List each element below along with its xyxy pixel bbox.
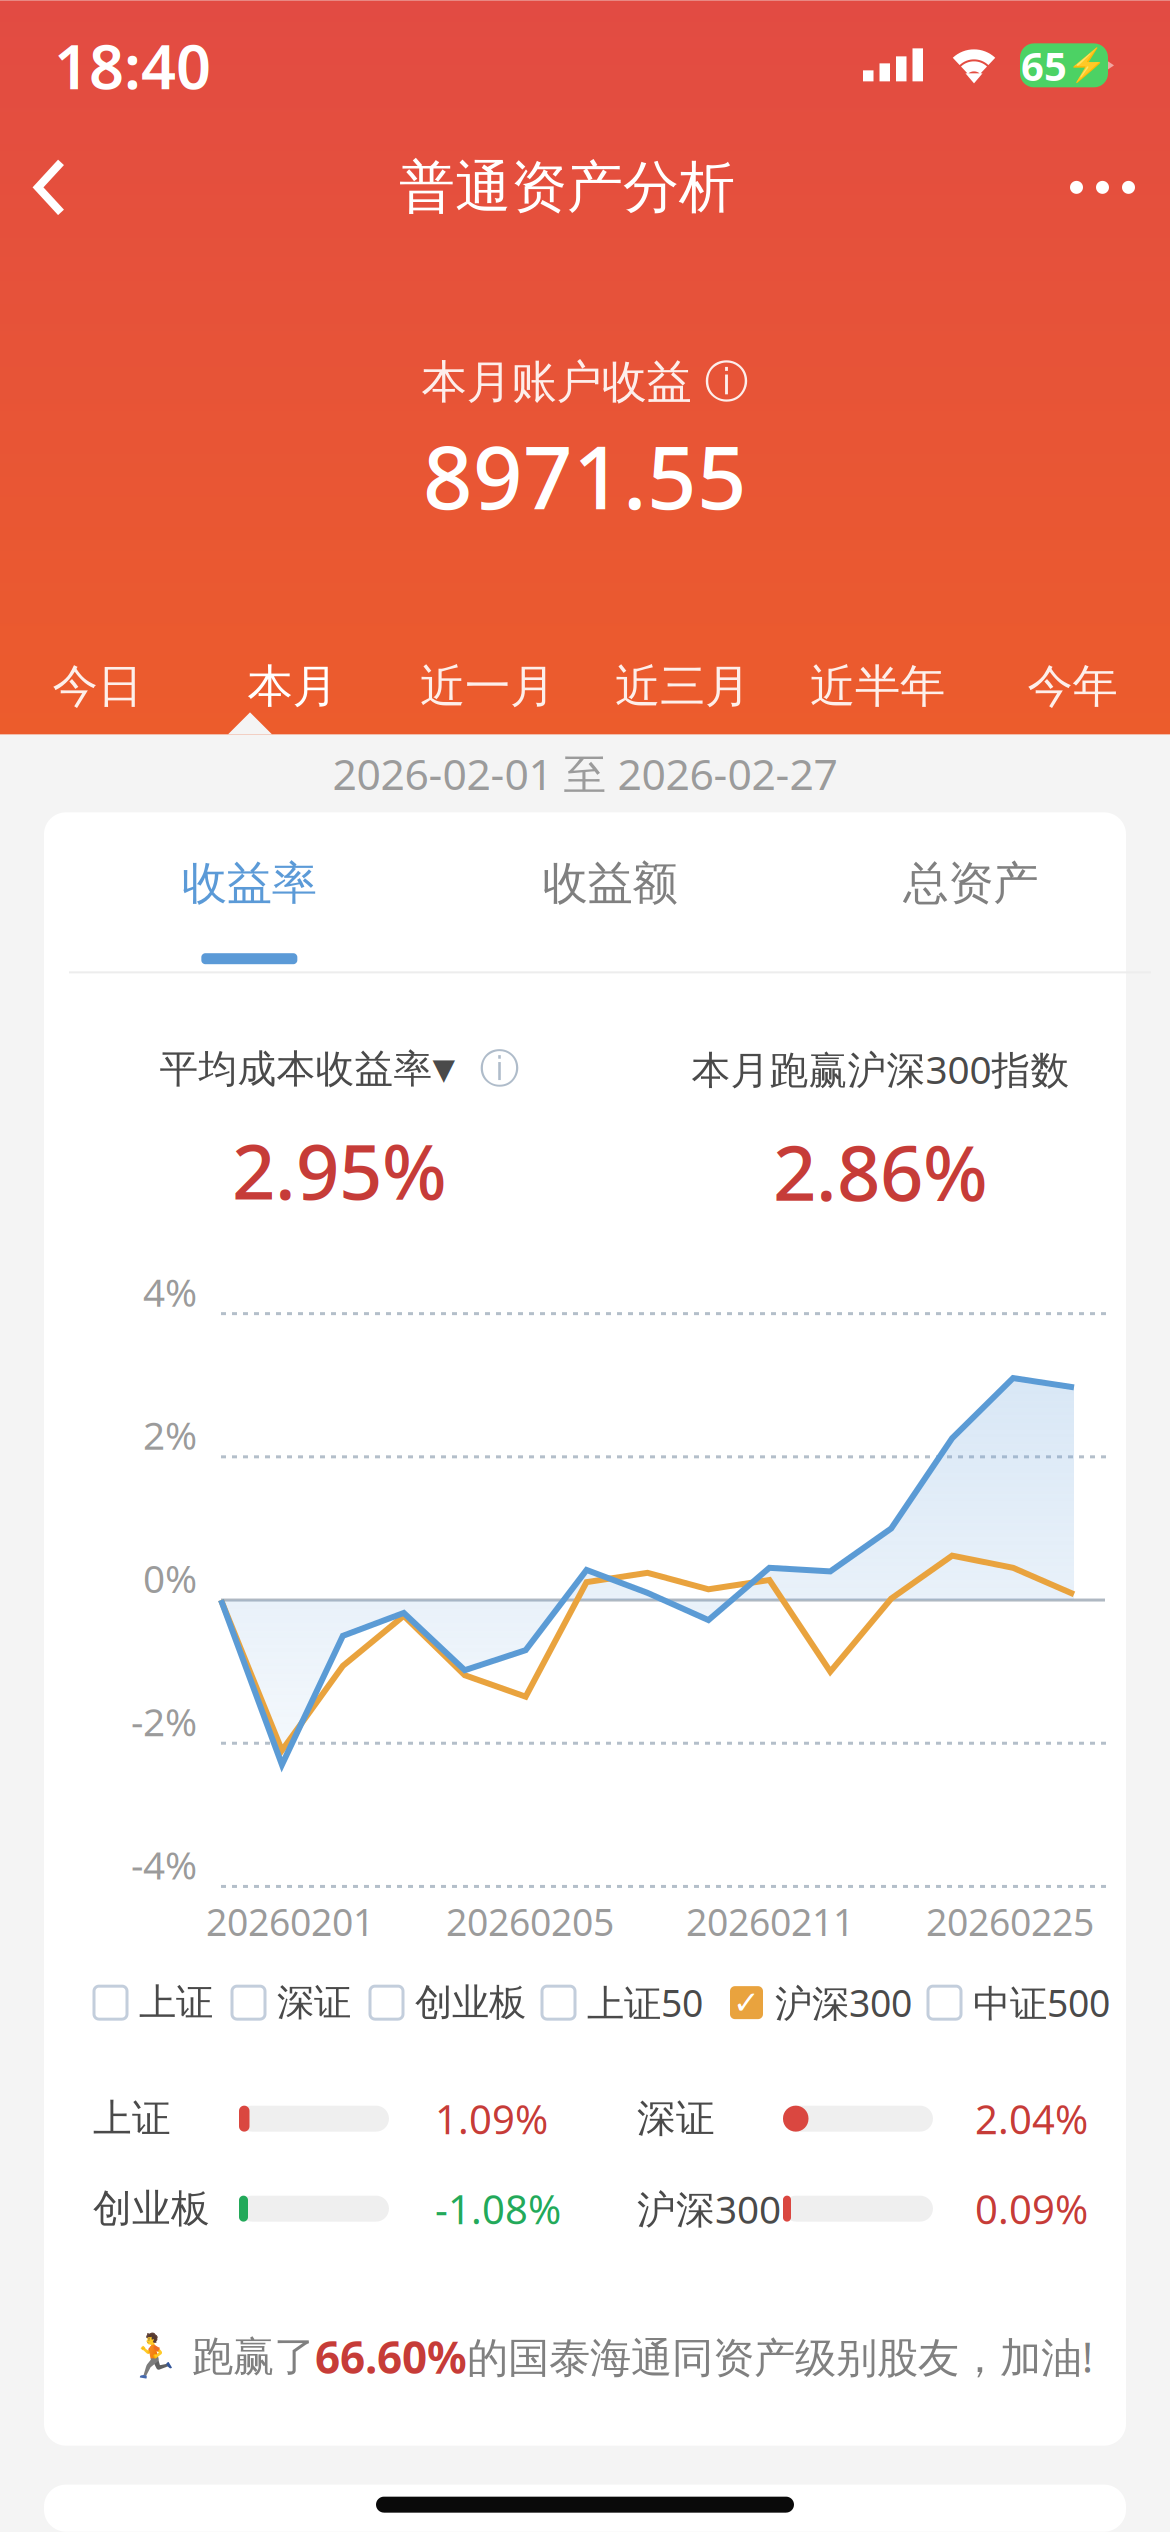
staticText: 创业板 <box>93 2185 210 2232</box>
button[interactable]: 创业板 <box>370 1980 542 2026</box>
staticText: 0.09% <box>975 2182 1088 2235</box>
staticText: 平均成本收益率 <box>159 1045 432 1093</box>
staticText: ⚡ <box>1067 47 1107 84</box>
staticText: 本月跑赢沪深300指数 <box>691 1043 1069 1095</box>
button[interactable]: 本月 <box>195 638 390 734</box>
staticText: 沪深300 <box>637 2183 781 2234</box>
staticText: ✓ <box>733 1984 760 2021</box>
staticText: 总资产 <box>903 855 1038 911</box>
staticText: 上证50 <box>587 1978 703 2027</box>
staticText: 跑赢了 <box>192 2331 315 2382</box>
staticText: 🏃 <box>127 2332 180 2381</box>
staticText: -2% <box>131 1696 197 1747</box>
button[interactable]: 近三月 <box>585 638 780 734</box>
staticText: 上证 <box>139 1980 213 2026</box>
staticText: 创业板 <box>415 1980 526 2026</box>
staticText: 本月 <box>247 658 337 714</box>
staticText: 2.86% <box>773 1121 988 1222</box>
button[interactable]: Back <box>0 130 99 244</box>
staticText: 沪深300 <box>775 1978 912 2027</box>
staticText: 收益额 <box>542 855 677 911</box>
staticText: 4% <box>143 1266 197 1317</box>
staticText: 的国泰海通同资产级别股友，加油! <box>467 2329 1093 2384</box>
staticText: 今年 <box>1027 658 1117 714</box>
staticText: 20260205 <box>446 1897 614 1946</box>
staticText: 深证 <box>637 2095 715 2142</box>
button[interactable]: 中证500 <box>928 1980 1126 2026</box>
button[interactable]: ✓ <box>730 1980 928 2026</box>
button[interactable]: 今年 <box>975 638 1170 734</box>
staticText: ⓘ <box>704 355 748 409</box>
button[interactable]: 今日 <box>0 638 195 734</box>
staticText: 普通资产分析 <box>399 153 735 222</box>
button[interactable]: 上证 <box>94 1980 232 2026</box>
staticText: 近半年 <box>810 658 945 714</box>
staticText: 20260211 <box>686 1897 854 1946</box>
button[interactable]: 上证50 <box>542 1980 730 2026</box>
button[interactable]: 收益额 <box>430 810 790 971</box>
staticText: -1.08% <box>435 2182 561 2235</box>
staticText: -4% <box>131 1839 197 1890</box>
staticText: 2.95% <box>232 1120 447 1220</box>
staticText: 20260225 <box>926 1897 1094 1946</box>
staticText: 2.04% <box>975 2092 1088 2145</box>
staticText: 收益率 <box>182 855 317 911</box>
staticText: ▼ <box>432 1052 455 1086</box>
button[interactable]: 深证 <box>232 1980 370 2026</box>
staticText: 近一月 <box>420 658 555 714</box>
button[interactable]: 收益率 <box>69 810 430 971</box>
staticText: 中证500 <box>973 1978 1110 2027</box>
staticText: 本月账户收益 <box>421 354 691 410</box>
staticText: 2026-02-01 至 2026-02-27 <box>332 745 837 802</box>
button[interactable]: More options <box>1035 130 1170 244</box>
staticText: 上证 <box>93 2095 171 2142</box>
staticText: 2% <box>143 1409 197 1460</box>
staticText: 今日 <box>52 658 142 714</box>
staticText: 20260201 <box>206 1897 374 1946</box>
button[interactable]: 近一月 <box>390 638 585 734</box>
staticText: 18:40 <box>54 25 211 106</box>
staticText: 深证 <box>277 1980 351 2026</box>
button[interactable]: 近半年 <box>780 638 975 734</box>
staticText: 8971.55 <box>423 418 747 533</box>
staticText: ⓘ <box>479 1044 519 1094</box>
button[interactable]: 总资产 <box>790 810 1151 971</box>
staticText: 1.09% <box>435 2092 548 2145</box>
staticText: 65 <box>1021 39 1067 92</box>
staticText: 66.60% <box>315 2327 467 2386</box>
staticText: 近三月 <box>615 658 750 714</box>
staticText: 0% <box>143 1552 197 1604</box>
